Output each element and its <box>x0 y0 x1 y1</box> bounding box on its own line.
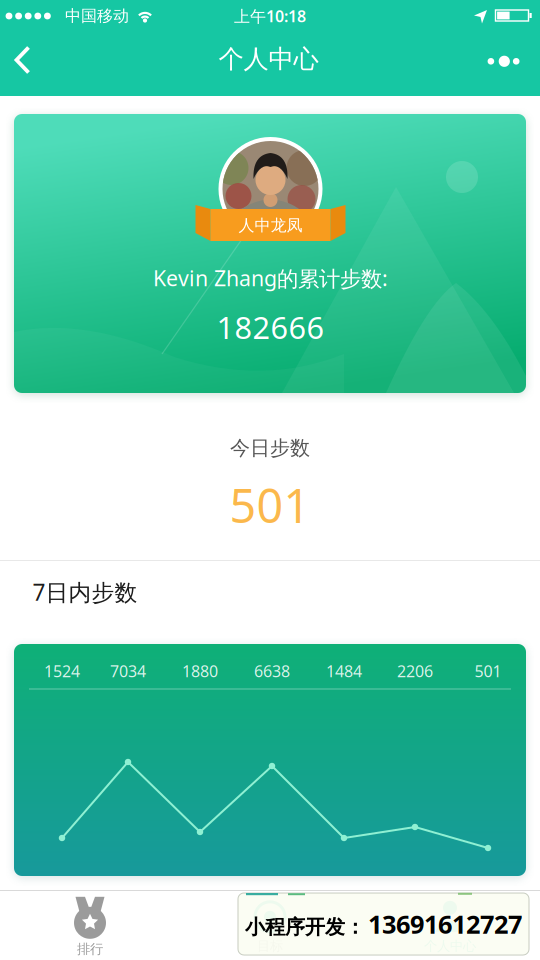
staticText: 501 <box>474 660 501 682</box>
staticText: 2206 <box>397 660 433 682</box>
staticText: 7034 <box>110 660 146 682</box>
button[interactable]: 个人中心 <box>380 895 520 957</box>
staticText: 上午10:18 <box>234 5 306 27</box>
staticText: 1880 <box>182 660 218 682</box>
staticText: 小程序开发： <box>245 915 365 939</box>
button[interactable]: 排行 <box>20 894 160 960</box>
button[interactable]: 目标 <box>200 895 340 957</box>
staticText: 1524 <box>44 660 80 682</box>
staticText: 个人中心 <box>218 43 318 74</box>
staticText: Kevin Zhang的累计步数: <box>153 264 388 292</box>
staticText: 排行 <box>77 941 103 957</box>
button[interactable]: Back <box>8 44 52 76</box>
staticText: 501 <box>229 474 310 536</box>
staticText: 中国移动 <box>65 6 129 26</box>
staticText: 人中龙凤 <box>238 216 302 235</box>
button[interactable]: More <box>485 49 525 73</box>
staticText: 6638 <box>254 660 290 682</box>
staticText: 13691612727 <box>368 907 522 941</box>
staticText: 182666 <box>216 307 324 347</box>
staticText: 1484 <box>326 660 362 682</box>
staticText: 今日步数 <box>230 436 310 460</box>
staticText: 个人中心 <box>424 938 476 954</box>
staticText: 7日内步数 <box>32 577 137 607</box>
